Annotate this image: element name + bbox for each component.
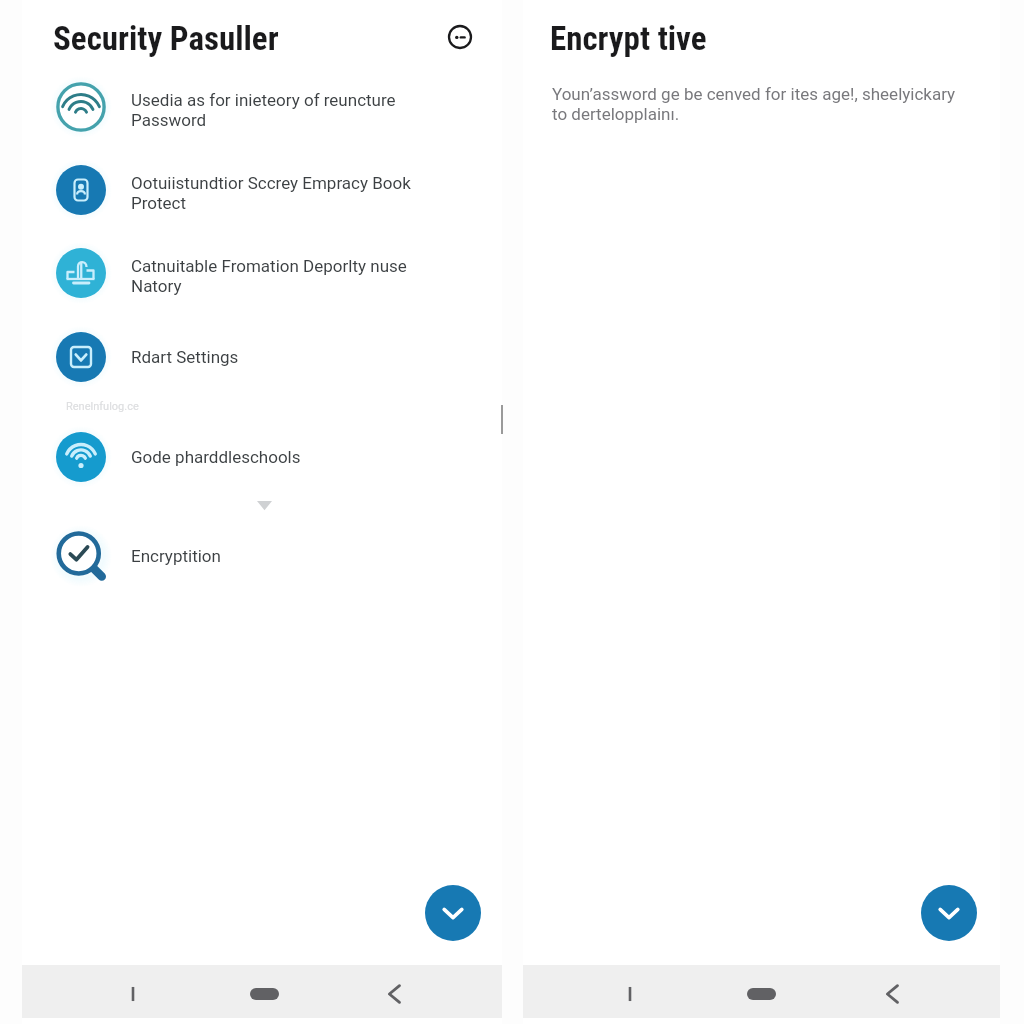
- staticText: Usedia as for inieteory of reuncture Pas…: [131, 90, 396, 130]
- staticText: Ootuiistundtior Sccrey Empracy Book Prot…: [131, 173, 411, 213]
- button[interactable]: Confirm: [921, 885, 977, 941]
- staticText: Renelnfulog.ce: [66, 400, 139, 413]
- button[interactable]: Confirm: [425, 885, 481, 941]
- button[interactable]: Back: [870, 972, 914, 1016]
- button[interactable]: Ootuiistundtior Sccrey Empracy Book Prot…: [22, 154, 502, 226]
- button[interactable]: Home: [242, 972, 286, 1016]
- button[interactable]: Usedia as for inieteory of reuncture Pas…: [22, 71, 502, 143]
- staticText: Youn’assword ge be cenved for ites age!,…: [552, 84, 956, 124]
- button[interactable]: Recent apps: [111, 972, 155, 1016]
- button[interactable]: Recent apps: [608, 972, 652, 1016]
- staticText: Security Pasuller: [53, 19, 279, 58]
- staticText: Rdart Settings: [131, 347, 239, 367]
- staticText: Encryptition: [131, 546, 221, 566]
- button[interactable]: Rdart Settings: [22, 321, 502, 393]
- staticText: Catnuitable Fromation Deporlty nuse Nato…: [131, 256, 407, 296]
- button[interactable]: Encryptition: [22, 520, 502, 592]
- button[interactable]: More options: [443, 20, 477, 54]
- button[interactable]: Home: [739, 972, 783, 1016]
- button[interactable]: Gode pharddleschools: [22, 421, 502, 493]
- staticText: Gode pharddleschools: [131, 447, 301, 467]
- button[interactable]: Catnuitable Fromation Deporlty nuse Nato…: [22, 237, 502, 309]
- button[interactable]: Back: [372, 972, 416, 1016]
- staticText: Encrypt tive: [550, 19, 707, 58]
